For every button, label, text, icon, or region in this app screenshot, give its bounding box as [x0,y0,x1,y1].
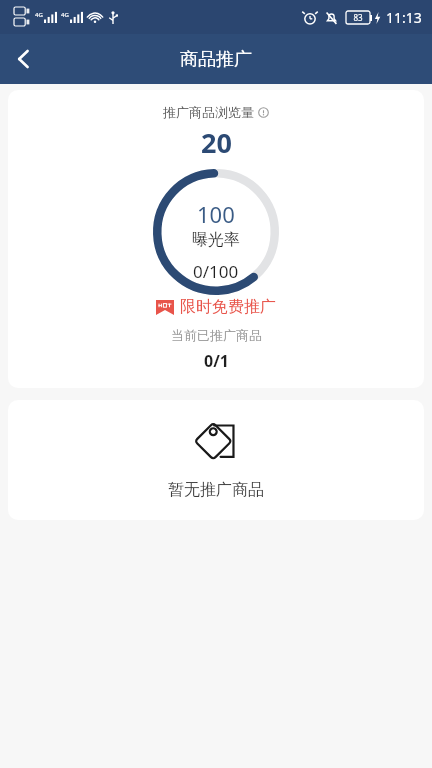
staticText: 限时免费推广 [180,297,276,317]
staticText: 83 [353,12,363,23]
staticText: 20 [201,124,232,161]
staticText: 当前已推广商品 [171,327,262,343]
staticText: 4G [35,11,43,19]
staticText: 100 [197,199,235,229]
staticText: 0/100 [193,260,239,283]
staticText: 商品推广 [180,48,252,71]
other: No promoted products [193,420,239,466]
button[interactable]: No promoted products [8,400,424,520]
staticText: 11:13 [386,8,422,27]
button[interactable]: 推广商品浏览量 [8,90,424,388]
staticText: 4G [61,11,69,19]
staticText: 0/1 [204,350,229,372]
staticText: 曝光率 [192,230,240,250]
staticText: 推广商品浏览量 [163,104,254,120]
button[interactable]: Back [0,35,48,83]
staticText: 暂无推广商品 [168,480,264,500]
